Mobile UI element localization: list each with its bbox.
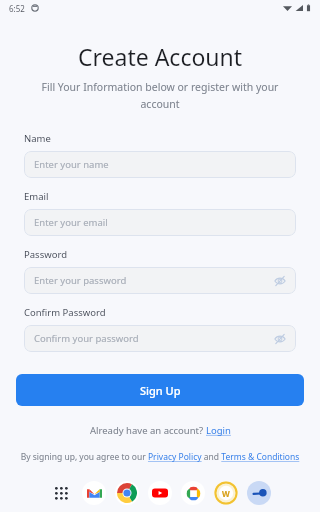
staticText: Password — [24, 248, 67, 261]
button[interactable]: App — [247, 481, 271, 505]
staticText: Confirm Password — [24, 306, 106, 319]
button[interactable]: All apps — [49, 481, 73, 505]
button[interactable]: Confirm your password — [24, 325, 296, 352]
staticText: Enter your name — [34, 158, 286, 171]
button[interactable]: Wallet — [214, 481, 238, 505]
button[interactable]: Chrome — [115, 481, 139, 505]
staticText: 6:52 — [9, 3, 25, 14]
button[interactable]: Enter your email — [24, 209, 296, 236]
staticText: By signing up, you agree to our Privacy … — [8, 451, 312, 463]
staticText: Create Account — [0, 41, 320, 72]
staticText: Enter your email — [34, 216, 286, 229]
button[interactable]: Enter your name — [24, 151, 296, 178]
staticText: Enter your password — [34, 274, 273, 287]
staticText: Sign Up — [140, 383, 181, 398]
staticText: Already have an account? — [90, 424, 206, 437]
button[interactable]: YouTube — [148, 481, 172, 505]
button[interactable]: Toggle password visibility — [273, 274, 286, 287]
staticText: Login — [206, 424, 231, 437]
button[interactable]: Enter your password — [24, 267, 296, 294]
button[interactable]: Sign Up — [16, 374, 304, 406]
button[interactable]: Google Photos — [181, 481, 205, 505]
staticText: Email — [24, 190, 49, 203]
button[interactable]: Toggle password visibility — [273, 332, 286, 345]
button[interactable]: Gmail — [82, 481, 106, 505]
staticText: W — [222, 488, 230, 499]
staticText: Confirm your password — [34, 332, 273, 345]
button[interactable]: Login — [206, 424, 231, 437]
staticText: Fill Your Information below or register … — [30, 80, 290, 111]
staticText: Name — [24, 132, 51, 145]
